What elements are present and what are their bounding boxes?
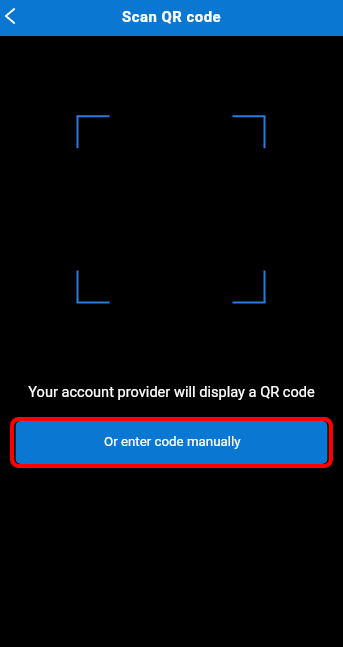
staticText: Scan QR code	[122, 8, 222, 25]
button[interactable]: Or enter code manually	[10, 417, 333, 468]
staticText: Or enter code manually	[104, 434, 241, 450]
staticText: Your account provider will display a QR …	[0, 383, 343, 400]
button[interactable]: Back	[0, 2, 32, 34]
